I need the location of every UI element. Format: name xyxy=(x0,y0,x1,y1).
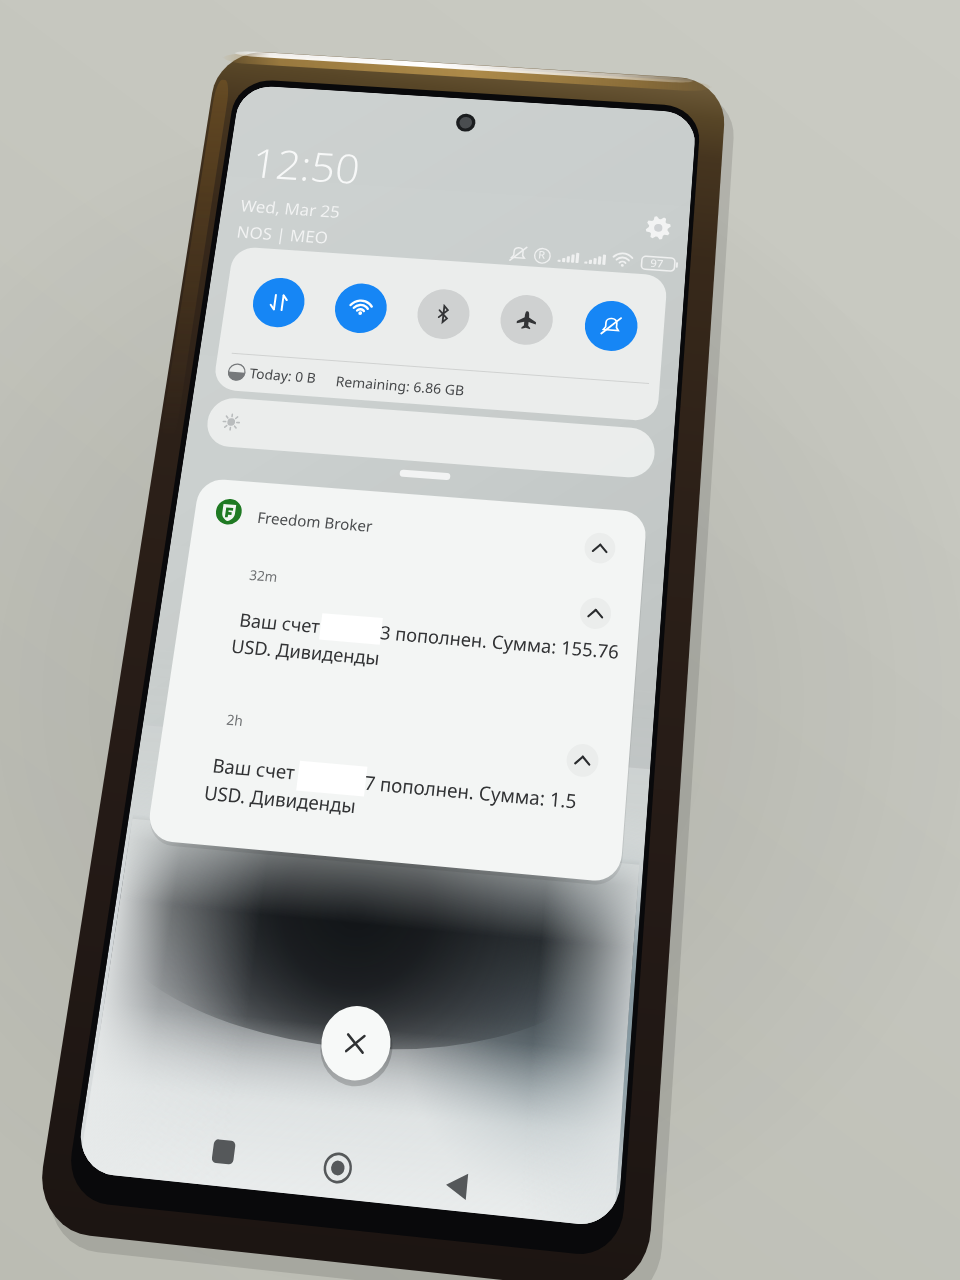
button[interactable]: Phone showing notification shade xyxy=(0,0,960,1280)
